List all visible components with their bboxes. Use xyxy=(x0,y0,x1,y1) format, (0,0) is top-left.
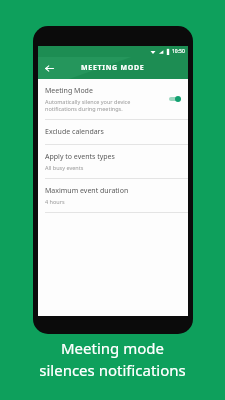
button[interactable]: Exclude calendars xyxy=(38,120,188,144)
staticText: 4 hours xyxy=(45,198,65,205)
staticText: All busy events xyxy=(45,164,84,171)
staticText: Apply to events types xyxy=(45,152,115,162)
staticText: MEETING MODE xyxy=(81,63,145,73)
staticText: 10:50 xyxy=(172,48,185,55)
staticText: silences notifications xyxy=(39,360,186,380)
staticText: Maximum event duration xyxy=(45,186,129,196)
staticText: Automatically silence your device notifi… xyxy=(45,98,163,112)
staticText: Meeting Mode xyxy=(45,86,93,96)
staticText: Meeting mode xyxy=(61,338,164,358)
button[interactable]: Back xyxy=(41,60,57,76)
button[interactable]: Apply to events types xyxy=(38,145,188,178)
staticText: Exclude calendars xyxy=(45,127,104,137)
button[interactable]: Meeting Mode xyxy=(38,79,188,119)
button[interactable]: Maximum event duration xyxy=(38,179,188,212)
